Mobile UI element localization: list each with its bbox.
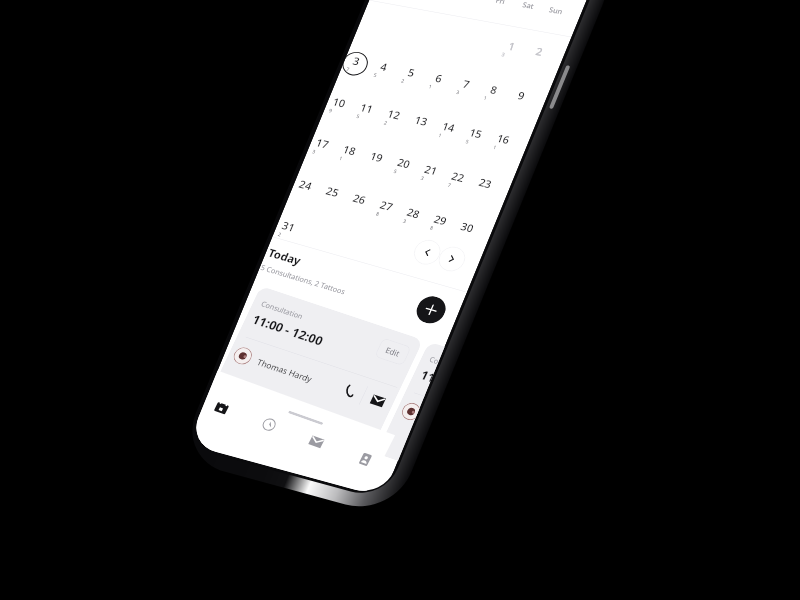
button[interactable]: 16 xyxy=(473,114,531,170)
staticText: 29 xyxy=(427,207,453,233)
button[interactable]: Add appointment xyxy=(403,283,459,336)
staticText: 8 xyxy=(373,209,383,218)
button[interactable]: 12 xyxy=(364,89,422,145)
staticText: 25 xyxy=(319,179,346,204)
button[interactable]: 20 xyxy=(374,139,431,193)
button[interactable]: Calendar xyxy=(194,380,250,434)
staticText: 26 xyxy=(346,186,372,212)
button[interactable]: 26 xyxy=(330,175,386,229)
staticText: 1 xyxy=(501,36,522,57)
button[interactable]: 6 xyxy=(408,53,467,109)
button[interactable]: Messages xyxy=(288,414,344,468)
staticText: 14 xyxy=(435,114,462,140)
staticText: 30 xyxy=(454,215,480,240)
button[interactable]: 17 xyxy=(296,121,350,172)
button[interactable]: 10 xyxy=(313,79,367,132)
button[interactable]: 4 xyxy=(353,41,412,98)
staticText: 12 xyxy=(380,101,407,128)
staticText: 5 xyxy=(462,136,473,146)
staticText: 9 xyxy=(326,105,336,115)
staticText: 1 xyxy=(480,93,491,103)
button[interactable]: 2 xyxy=(508,25,568,83)
staticText: 15 xyxy=(462,120,489,146)
button[interactable]: 18 xyxy=(320,126,377,180)
staticText: 28 xyxy=(400,201,426,226)
staticText: Thomas Hardy xyxy=(250,336,320,404)
staticText: Sat xyxy=(517,0,540,16)
button[interactable]: Previous month xyxy=(402,228,452,276)
staticText: 2 xyxy=(275,229,285,239)
staticText: 1 xyxy=(435,130,445,140)
staticText: 27 xyxy=(373,193,400,219)
button[interactable]: 11 xyxy=(337,83,395,139)
staticText: 5 xyxy=(353,111,364,121)
button[interactable]: Email xyxy=(355,378,401,422)
staticText: 22 xyxy=(445,164,471,190)
button[interactable]: 30 xyxy=(438,203,494,257)
button[interactable]: 5 xyxy=(381,47,439,103)
staticText: 11:00 - 12:00 xyxy=(242,285,334,374)
staticText: 20 xyxy=(390,151,417,176)
button[interactable]: 15 xyxy=(446,108,504,164)
button[interactable]: 1 xyxy=(481,20,540,77)
button[interactable]: Consultation xyxy=(164,223,467,515)
staticText: 11:00 - 12:00 xyxy=(410,362,442,392)
staticText: 5 xyxy=(401,62,422,83)
button[interactable]: 8 xyxy=(463,64,522,121)
staticText: 2 xyxy=(381,117,391,127)
staticText: 23 xyxy=(472,170,499,196)
button[interactable]: 7 xyxy=(436,58,494,115)
button[interactable]: 31 xyxy=(262,204,315,255)
button[interactable]: 29 xyxy=(411,196,467,250)
button[interactable]: Contacts xyxy=(337,432,393,486)
button[interactable]: 24 xyxy=(279,162,332,213)
button[interactable]: 9 xyxy=(491,70,549,126)
staticText: 16 xyxy=(490,126,517,152)
button[interactable]: 3 xyxy=(329,38,384,91)
button[interactable]: 14 xyxy=(419,102,476,158)
staticText: 10 xyxy=(325,89,353,116)
staticText: 9 xyxy=(511,85,532,106)
staticText: Sun xyxy=(544,0,568,23)
button[interactable]: 28 xyxy=(384,189,440,243)
staticText: 3 xyxy=(400,216,410,226)
button[interactable]: Next month xyxy=(427,235,477,283)
staticText: 13 xyxy=(408,108,435,134)
staticText: 3 xyxy=(453,87,463,97)
staticText: 1 xyxy=(425,81,436,91)
staticText: 3 xyxy=(418,173,428,183)
staticText: 1 xyxy=(490,142,500,152)
staticText: 31 xyxy=(275,214,302,239)
button[interactable]: Schedule xyxy=(241,397,297,451)
staticText: 7 xyxy=(456,74,477,94)
button[interactable]: 23 xyxy=(456,158,513,213)
button[interactable]: 25 xyxy=(303,168,359,221)
staticText: 2 xyxy=(398,75,408,85)
staticText: 24 xyxy=(292,172,319,198)
staticText: 5 xyxy=(390,166,401,176)
staticText: 4 xyxy=(373,57,395,77)
button[interactable]: Call xyxy=(327,369,372,413)
staticText: Consultation xyxy=(255,283,309,336)
staticText: 19 xyxy=(363,144,390,170)
staticText: 3 xyxy=(346,51,367,71)
staticText: 17 xyxy=(309,131,336,156)
staticText: 8 xyxy=(427,223,437,232)
staticText: 5 Consultations, 2 Tattoos xyxy=(255,232,352,327)
button[interactable]: 27 xyxy=(357,182,413,235)
button[interactable]: 21 xyxy=(401,145,458,200)
staticText: Today xyxy=(261,234,308,280)
button[interactable]: 22 xyxy=(428,152,485,207)
staticText: Edit xyxy=(380,339,406,364)
staticText: 6 xyxy=(428,68,450,89)
button[interactable]: 19 xyxy=(347,132,404,187)
button[interactable]: 13 xyxy=(391,96,449,151)
button[interactable]: Edit xyxy=(367,327,419,377)
staticText: 7 xyxy=(445,180,455,189)
staticText: 11 xyxy=(353,95,380,121)
staticText: 3 xyxy=(498,49,509,59)
button[interactable]: Consultation xyxy=(333,332,485,476)
staticText: 2 xyxy=(528,41,550,62)
